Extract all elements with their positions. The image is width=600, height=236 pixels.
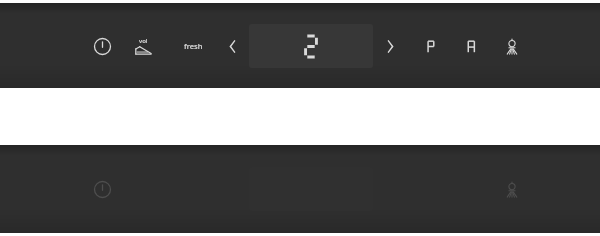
button[interactable]: Power <box>87 169 117 209</box>
button[interactable]: Previous <box>219 26 245 66</box>
button[interactable]: Next <box>377 26 403 66</box>
staticText: vol <box>139 37 148 45</box>
button[interactable]: Fresh <box>173 26 213 66</box>
button[interactable]: Light <box>497 169 527 209</box>
button[interactable]: Steam volume <box>127 26 159 66</box>
button[interactable]: Programme display <box>249 24 373 68</box>
staticText: fresh <box>184 41 203 51</box>
button[interactable]: Light <box>497 26 527 66</box>
button[interactable]: Programme <box>417 26 445 66</box>
button[interactable]: Auto <box>457 26 485 66</box>
button[interactable]: Power <box>87 26 117 66</box>
